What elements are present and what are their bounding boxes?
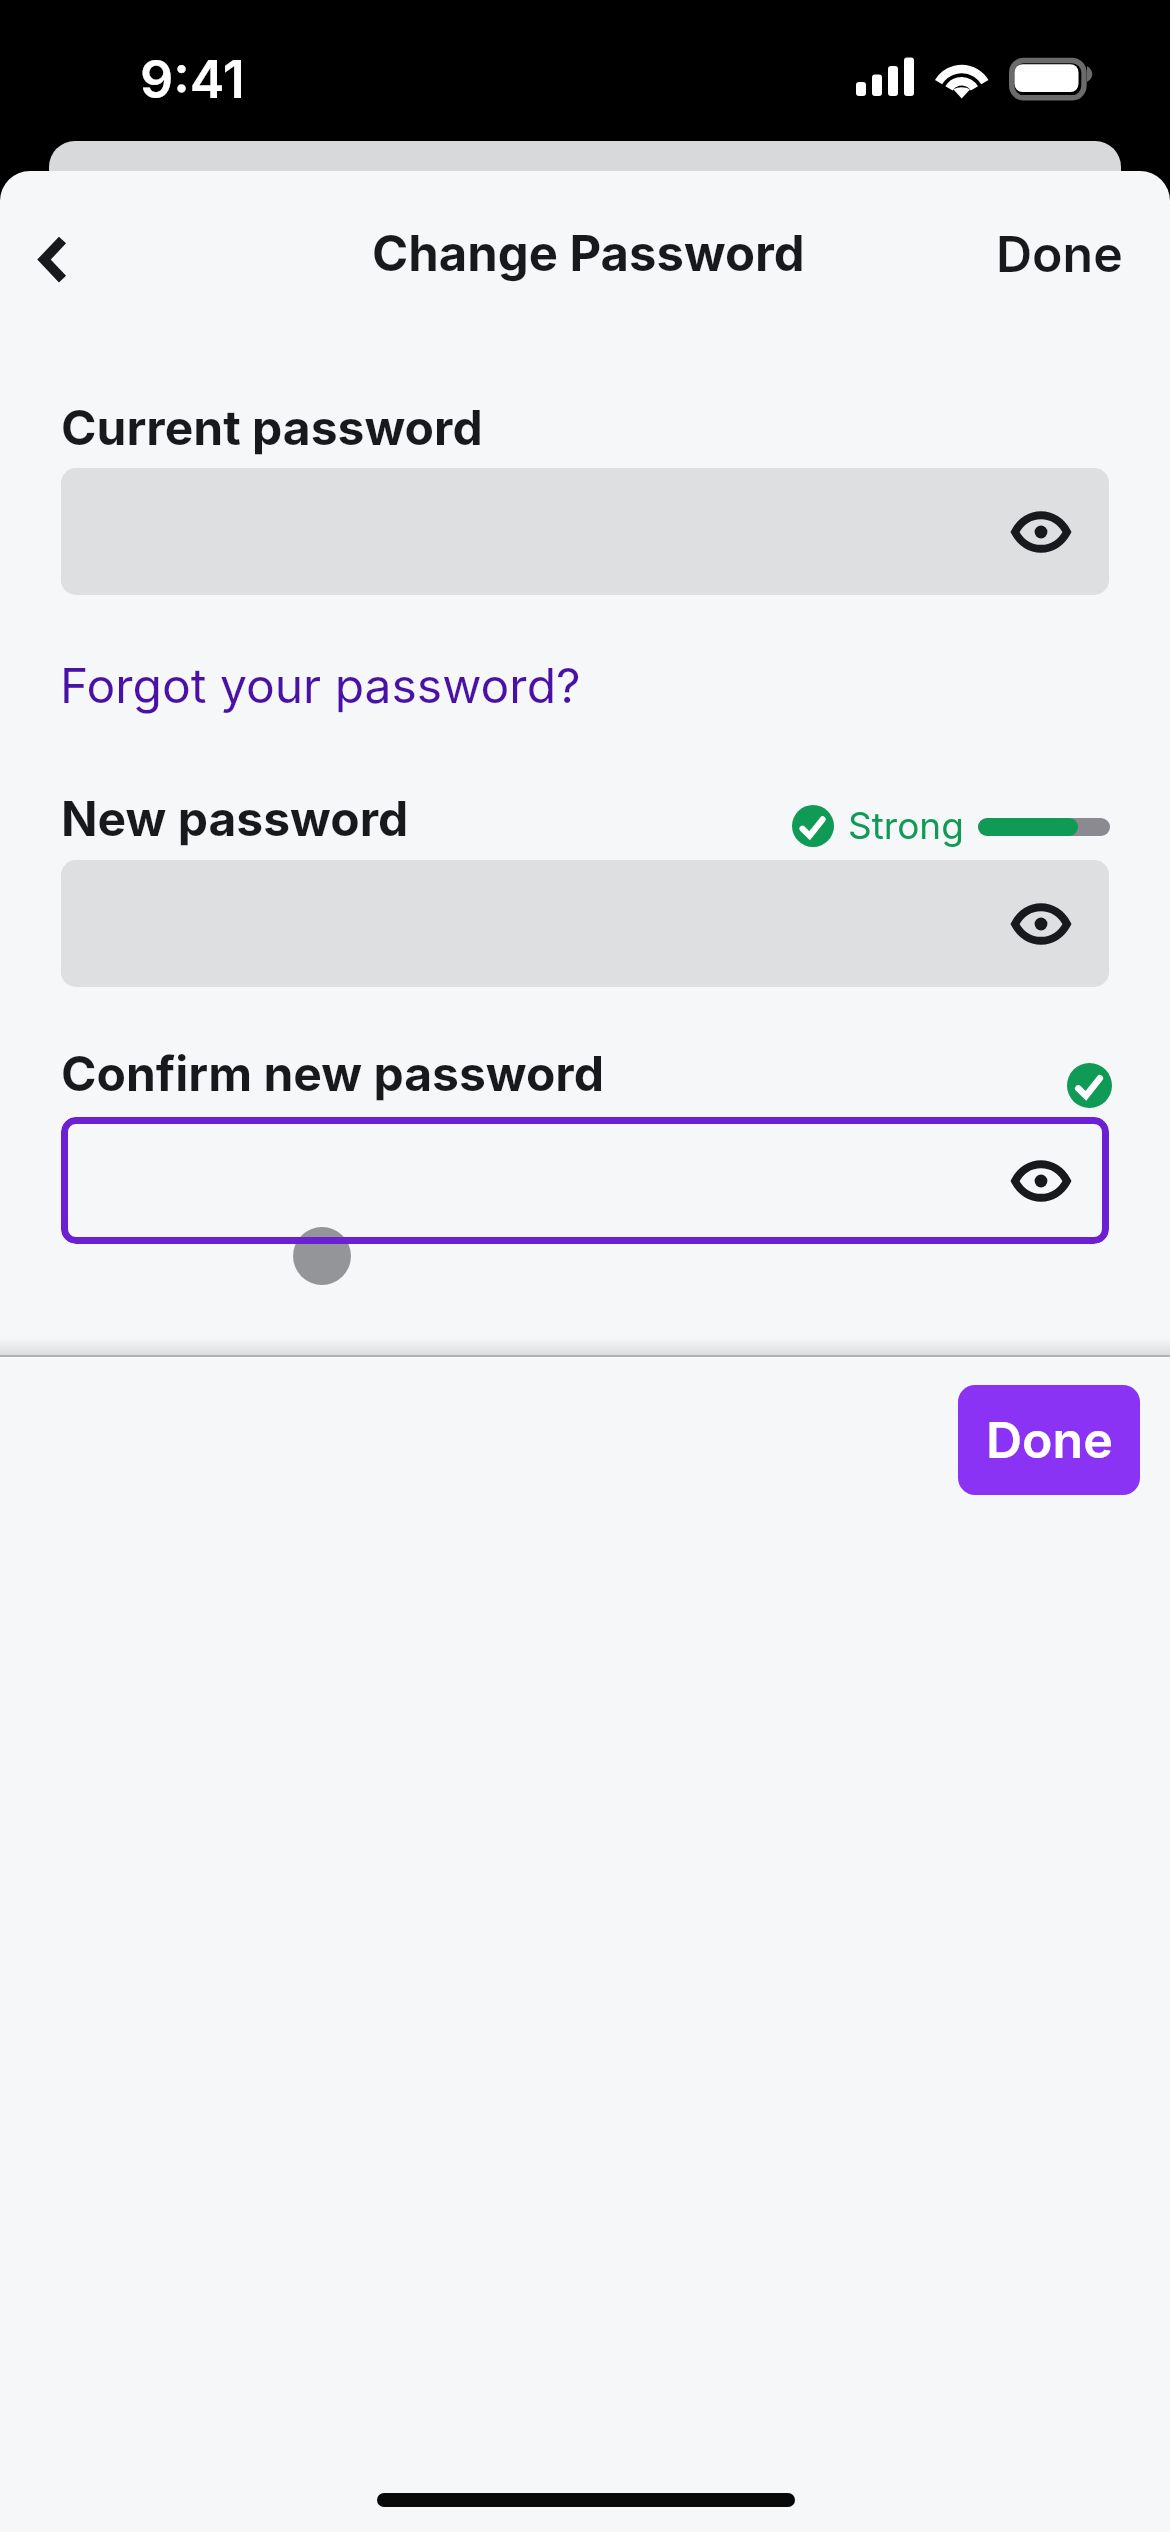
button[interactable]: Done [970, 202, 1149, 306]
button[interactable]: Show password [61, 468, 1109, 595]
staticText: 9:41 [140, 48, 245, 111]
staticText: Done [986, 1410, 1113, 1470]
button[interactable]: Show password [997, 880, 1085, 968]
staticText: New password [61, 789, 409, 847]
button[interactable]: Show password [61, 860, 1109, 987]
staticText: Strong [848, 803, 964, 848]
button[interactable]: Show password [997, 1137, 1085, 1225]
staticText: Change Password [372, 224, 805, 283]
button[interactable]: Forgot your password? [54, 648, 587, 722]
staticText: Current password [61, 398, 483, 456]
button[interactable]: Show password [997, 488, 1085, 576]
button[interactable]: Done [958, 1385, 1140, 1495]
button[interactable]: Back [8, 216, 96, 304]
staticText: Confirm new password [61, 1044, 604, 1102]
button[interactable]: Show password [61, 1117, 1109, 1244]
staticText: Forgot your password? [60, 656, 581, 714]
staticText: Done [996, 224, 1123, 284]
